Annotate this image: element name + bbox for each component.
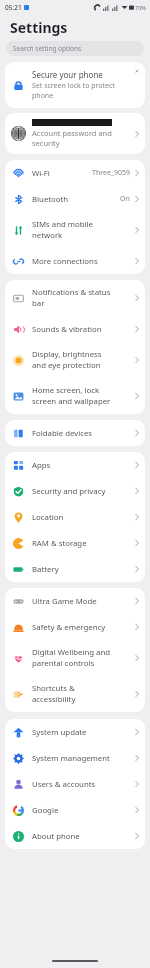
button[interactable]: System update xyxy=(5,719,145,745)
staticText: network xyxy=(32,230,63,241)
button[interactable]: Secure your phone xyxy=(5,62,145,108)
staticText: security xyxy=(32,138,60,148)
staticText: Digital Wellbeing and xyxy=(32,647,111,658)
staticText: RAM & storage xyxy=(32,538,87,549)
button[interactable]: System management xyxy=(5,745,145,771)
button[interactable]: Ultra Game Mode xyxy=(5,588,145,614)
staticText: Sounds & vibration xyxy=(32,324,102,335)
button[interactable]: More connections xyxy=(5,248,145,274)
button[interactable]: Display, brightness xyxy=(5,342,145,378)
button[interactable]: Bluetooth xyxy=(5,186,145,212)
staticText: Secure your phone xyxy=(32,69,103,80)
staticText: 70% xyxy=(135,4,146,11)
staticText: parental controls xyxy=(32,658,95,669)
staticText: bar xyxy=(32,298,45,309)
staticText: Foldable devices xyxy=(32,428,93,439)
staticText: Account password and xyxy=(32,128,112,138)
staticText: accessibility xyxy=(32,694,76,705)
staticText: and eye protection xyxy=(32,360,101,371)
button[interactable]: Location xyxy=(5,504,145,530)
staticText: Set screen lock to protect xyxy=(32,81,115,91)
button[interactable]: Users & accounts xyxy=(5,771,145,797)
button[interactable]: Account password and xyxy=(5,113,145,154)
button[interactable]: About phone xyxy=(5,823,145,849)
staticText: Apps xyxy=(32,460,51,471)
staticText: Notifications & status xyxy=(32,287,111,298)
button[interactable]: Digital Wellbeing and xyxy=(5,640,145,676)
staticText: phone xyxy=(32,91,54,101)
staticText: Ultra Game Mode xyxy=(32,596,97,607)
staticText: screen and wallpaper xyxy=(32,396,111,407)
staticText: System management xyxy=(32,753,110,764)
button[interactable]: Wi-Fi xyxy=(5,160,145,186)
button[interactable]: RAM & storage xyxy=(5,530,145,556)
button[interactable]: Safety & emergency xyxy=(5,614,145,640)
button[interactable]: Apps xyxy=(5,452,145,478)
staticText: Settings xyxy=(10,18,68,37)
staticText: System update xyxy=(32,727,87,738)
staticText: Security and privacy xyxy=(32,486,106,497)
button[interactable]: Sounds & vibration xyxy=(5,316,145,342)
button[interactable]: Security and privacy xyxy=(5,478,145,504)
staticText: Search setting options xyxy=(13,44,82,53)
staticText: Location xyxy=(32,512,64,523)
staticText: SIMs and mobile xyxy=(32,219,93,230)
button[interactable]: Close xyxy=(132,66,141,75)
staticText: More connections xyxy=(32,256,98,267)
button[interactable]: Google xyxy=(5,797,145,823)
staticText: Home screen, lock xyxy=(32,385,100,396)
staticText: Safety & emergency xyxy=(32,622,106,633)
button[interactable]: SIMs and mobile xyxy=(5,212,145,248)
staticText: Battery xyxy=(32,564,59,575)
button[interactable]: Foldable devices xyxy=(5,420,145,446)
staticText: On xyxy=(120,194,130,204)
button[interactable]: Shortcuts & xyxy=(5,676,145,712)
staticText: Display, brightness xyxy=(32,349,102,360)
staticText: Three_9059 xyxy=(92,168,130,178)
button[interactable]: Notifications & status xyxy=(5,280,145,316)
button[interactable]: Battery xyxy=(5,556,145,582)
staticText: Shortcuts & xyxy=(32,683,75,694)
button[interactable]: Home screen, lock xyxy=(5,378,145,414)
staticText: Wi-Fi xyxy=(32,168,50,179)
staticText: Users & accounts xyxy=(32,779,96,790)
staticText: Google xyxy=(32,805,59,816)
button[interactable]: Search setting options xyxy=(6,41,144,56)
staticText: Bluetooth xyxy=(32,194,69,205)
staticText: 05:21 xyxy=(5,3,22,12)
staticText: About phone xyxy=(32,831,80,842)
